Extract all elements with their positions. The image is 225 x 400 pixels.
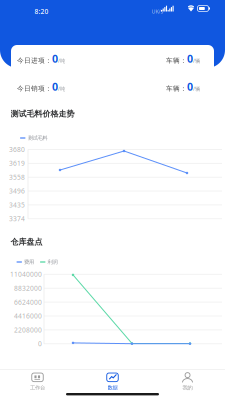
staticText: 3374 bbox=[9, 214, 25, 223]
staticText: 8:20 bbox=[34, 7, 48, 16]
staticText: /辆 bbox=[193, 85, 200, 92]
staticText: /吨 bbox=[58, 85, 65, 92]
staticText: 3619 bbox=[9, 159, 25, 168]
staticText: 4416000 bbox=[14, 311, 42, 320]
staticText: 今日进项： bbox=[17, 56, 52, 65]
staticText: 车辆： bbox=[166, 84, 187, 93]
staticText: 8832000 bbox=[14, 284, 42, 293]
staticText: 0 bbox=[187, 79, 193, 94]
staticText: /吨 bbox=[58, 57, 65, 64]
staticText: 3435 bbox=[9, 200, 25, 209]
staticText: 6624000 bbox=[14, 298, 42, 306]
staticText: 0 bbox=[52, 79, 58, 94]
staticText: 0 bbox=[38, 339, 42, 348]
staticText: 数据 bbox=[107, 384, 117, 391]
staticText: 0 bbox=[187, 51, 193, 66]
staticText: 0 bbox=[52, 51, 58, 66]
staticText: 我的 bbox=[182, 384, 192, 391]
staticText: 车辆： bbox=[166, 56, 187, 65]
staticText: 利润 bbox=[47, 259, 57, 265]
staticText: UK/s bbox=[151, 8, 163, 15]
button[interactable]: 工作台 bbox=[0, 369, 75, 393]
staticText: 工作台 bbox=[30, 384, 45, 391]
staticText: 今日销项： bbox=[17, 84, 52, 93]
staticText: 测试毛料价格走势 bbox=[10, 109, 74, 119]
staticText: 3558 bbox=[9, 173, 25, 182]
staticText: 费用 bbox=[24, 259, 34, 265]
staticText: 2208000 bbox=[14, 325, 42, 334]
staticText: 11040000 bbox=[10, 270, 42, 279]
staticText: 测试毛料 bbox=[27, 135, 47, 141]
staticText: 3496 bbox=[9, 186, 25, 195]
staticText: 3680 bbox=[9, 145, 25, 154]
staticText: /辆 bbox=[193, 57, 200, 64]
button[interactable]: 我的 bbox=[150, 369, 225, 393]
button[interactable]: 数据 bbox=[75, 369, 150, 393]
staticText: 仓库盘点 bbox=[10, 237, 42, 247]
